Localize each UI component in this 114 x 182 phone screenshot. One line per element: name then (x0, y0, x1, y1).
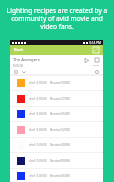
button[interactable]: Settings (94, 69, 100, 74)
staticText: chef 0:00:00 (29, 143, 47, 147)
button[interactable]: Edit (92, 46, 100, 54)
staticText: Neutral 5600K (50, 174, 71, 178)
staticText: Neutral 8000K (50, 159, 71, 163)
staticText: Neutral 4000K (50, 143, 71, 147)
button[interactable]: Record (13, 69, 19, 74)
staticText: chef 0:00:00 (29, 81, 47, 85)
staticText: 3:14 PM (89, 41, 101, 45)
button[interactable]: chef 0:00:00 (10, 153, 103, 168)
staticText: The Avengers (13, 57, 40, 63)
button[interactable]: chef 0:00:00 (10, 76, 103, 90)
staticText: Neutral 6500K (50, 112, 71, 116)
staticText: chef 0:00:00 (29, 97, 47, 101)
button[interactable]: chef 0:00:00 (10, 91, 103, 106)
staticText: 0:00:00 (13, 64, 24, 68)
button[interactable]: Stop (94, 57, 100, 63)
button[interactable]: chef 0:00:00 (10, 138, 103, 152)
button[interactable]: Play (83, 57, 90, 64)
staticText: Neutral 5000K (50, 81, 71, 85)
staticText: chef 0:00:00 (29, 174, 47, 178)
button[interactable]: chef 0:00:00 (10, 122, 103, 137)
staticText: Back (14, 47, 24, 53)
staticText: Lighting recipes are created by a commun… (4, 6, 110, 31)
button[interactable]: chef 0:00:00 (10, 169, 103, 182)
staticText: 00:00 (93, 63, 100, 66)
staticText: Neutral 2700K (50, 97, 71, 101)
button[interactable]: chef 0:00:00 (10, 107, 103, 121)
button[interactable]: Expand (21, 69, 27, 74)
button[interactable]: Back (13, 47, 25, 53)
staticText: chef 0:00:00 (29, 128, 47, 132)
staticText: chef 0:00:00 (29, 112, 47, 116)
staticText: Neutral 3200K (50, 128, 71, 132)
staticText: chef 0:00:00 (29, 159, 47, 163)
